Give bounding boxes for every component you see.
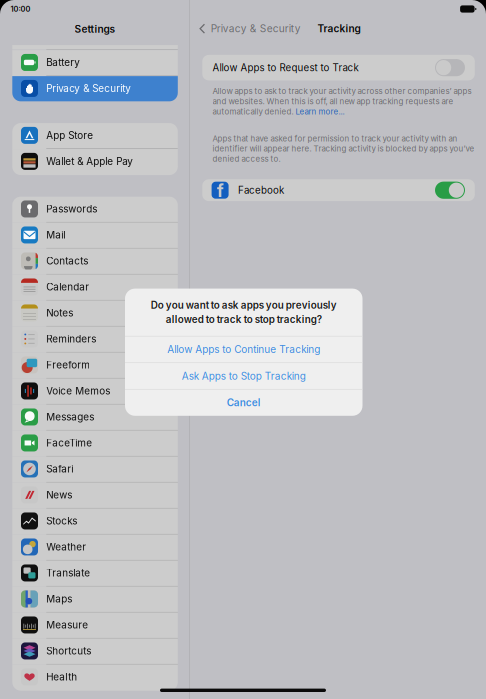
staticText: Ask Apps to Stop Tracking	[182, 370, 306, 382]
staticText: Tracking	[317, 22, 360, 35]
staticText: Calendar	[46, 281, 89, 293]
staticText: Privacy & Security	[46, 82, 131, 94]
button[interactable]: Notes	[12, 301, 178, 327]
staticText: Shortcuts	[46, 645, 91, 657]
staticText: Contacts	[46, 255, 88, 267]
button[interactable]: Freeform	[12, 353, 178, 379]
button[interactable]: Safari	[12, 457, 178, 483]
staticText: f	[217, 180, 224, 201]
staticText: Apps that have asked for permission to t…	[212, 134, 457, 143]
button[interactable]: Measure	[12, 613, 178, 639]
staticText: Facebook	[238, 184, 284, 196]
staticText: Stocks	[46, 515, 77, 527]
button[interactable]: Battery	[12, 50, 178, 76]
button[interactable]: Maps	[12, 587, 178, 613]
button[interactable]: Privacy & Security	[190, 16, 303, 42]
button[interactable]: Shortcuts	[12, 639, 178, 665]
button[interactable]: Contacts	[12, 249, 178, 275]
staticText: 10:00	[10, 4, 30, 13]
staticText: identifier will appear here. Tracking ac…	[212, 144, 474, 153]
button[interactable]: News	[12, 483, 178, 509]
staticText: Reminders	[46, 333, 96, 345]
button[interactable]: Messages	[12, 405, 178, 431]
staticText: Wallet & Apple Pay	[46, 155, 133, 167]
staticText: Allow Apps to Continue Tracking	[167, 343, 320, 355]
staticText: Learn more...	[295, 107, 344, 116]
staticText: Safari	[46, 463, 73, 475]
button[interactable]: Calendar	[12, 275, 178, 301]
staticText: Privacy & Security	[211, 22, 301, 35]
button[interactable]: Reminders	[12, 327, 178, 353]
staticText: Freeform	[46, 359, 90, 371]
button[interactable]: Allow Apps to Continue Tracking	[125, 337, 362, 362]
staticText: App Store	[46, 129, 93, 141]
staticText: Passwords	[46, 203, 97, 215]
button[interactable]: App Store	[12, 123, 178, 149]
button[interactable]: Ask Apps to Stop Tracking	[125, 363, 362, 389]
staticText: automatically denied.	[212, 107, 295, 116]
button[interactable]: Voice Memos	[12, 379, 178, 405]
button[interactable]: Passwords	[12, 197, 178, 223]
staticText: Messages	[46, 411, 94, 423]
button[interactable]: Privacy & Security	[12, 76, 178, 102]
button[interactable]: Cancel	[125, 390, 362, 416]
staticText: Translate	[46, 567, 90, 579]
staticText: Measure	[46, 619, 88, 631]
staticText: Maps	[46, 593, 72, 605]
button[interactable]: Translate	[12, 561, 178, 587]
staticText: Allow apps to ask to track your activity…	[212, 86, 471, 96]
staticText: and websites. When this is off, all new …	[212, 97, 453, 106]
staticText: Notes	[46, 307, 73, 319]
button[interactable]: Learn more...	[295, 107, 344, 116]
button[interactable]: f	[202, 179, 475, 201]
button[interactable]: FaceTime	[12, 431, 178, 457]
staticText: News	[46, 489, 72, 501]
staticText: allowed to track to stop tracking?	[166, 313, 322, 325]
button[interactable]: Wallet & Apple Pay	[12, 149, 178, 175]
staticText: denied access to.	[212, 154, 280, 164]
staticText: Do you want to ask apps you previously	[151, 299, 337, 311]
staticText: Weather	[46, 541, 86, 553]
staticText: FaceTime	[46, 437, 92, 449]
staticText: Allow Apps to Request to Track	[212, 62, 358, 74]
staticText: Battery	[46, 56, 80, 68]
staticText: Cancel	[227, 397, 261, 409]
button[interactable]: Stocks	[12, 509, 178, 535]
staticText: Settings	[74, 23, 115, 35]
button[interactable]: Mail	[12, 223, 178, 249]
staticText: Health	[46, 671, 77, 683]
button[interactable]: Health	[12, 665, 178, 691]
button[interactable]: Weather	[12, 535, 178, 561]
staticText: Voice Memos	[46, 385, 110, 397]
staticText: Mail	[46, 229, 65, 241]
